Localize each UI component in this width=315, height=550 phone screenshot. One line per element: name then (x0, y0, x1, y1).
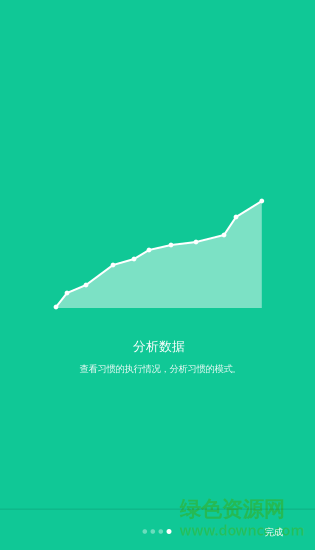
button[interactable]: Page 4 of 4 (134, 519, 179, 544)
staticText: www.downcc.com (180, 520, 305, 540)
staticText: 查看习惯的执行情况，分析习惯的模式。 (79, 363, 241, 375)
staticText: 分析数据 (133, 338, 185, 354)
staticText: 完成 (265, 526, 283, 538)
button[interactable]: 完成 (249, 516, 299, 548)
staticText: 绿色资源网 (179, 496, 284, 523)
